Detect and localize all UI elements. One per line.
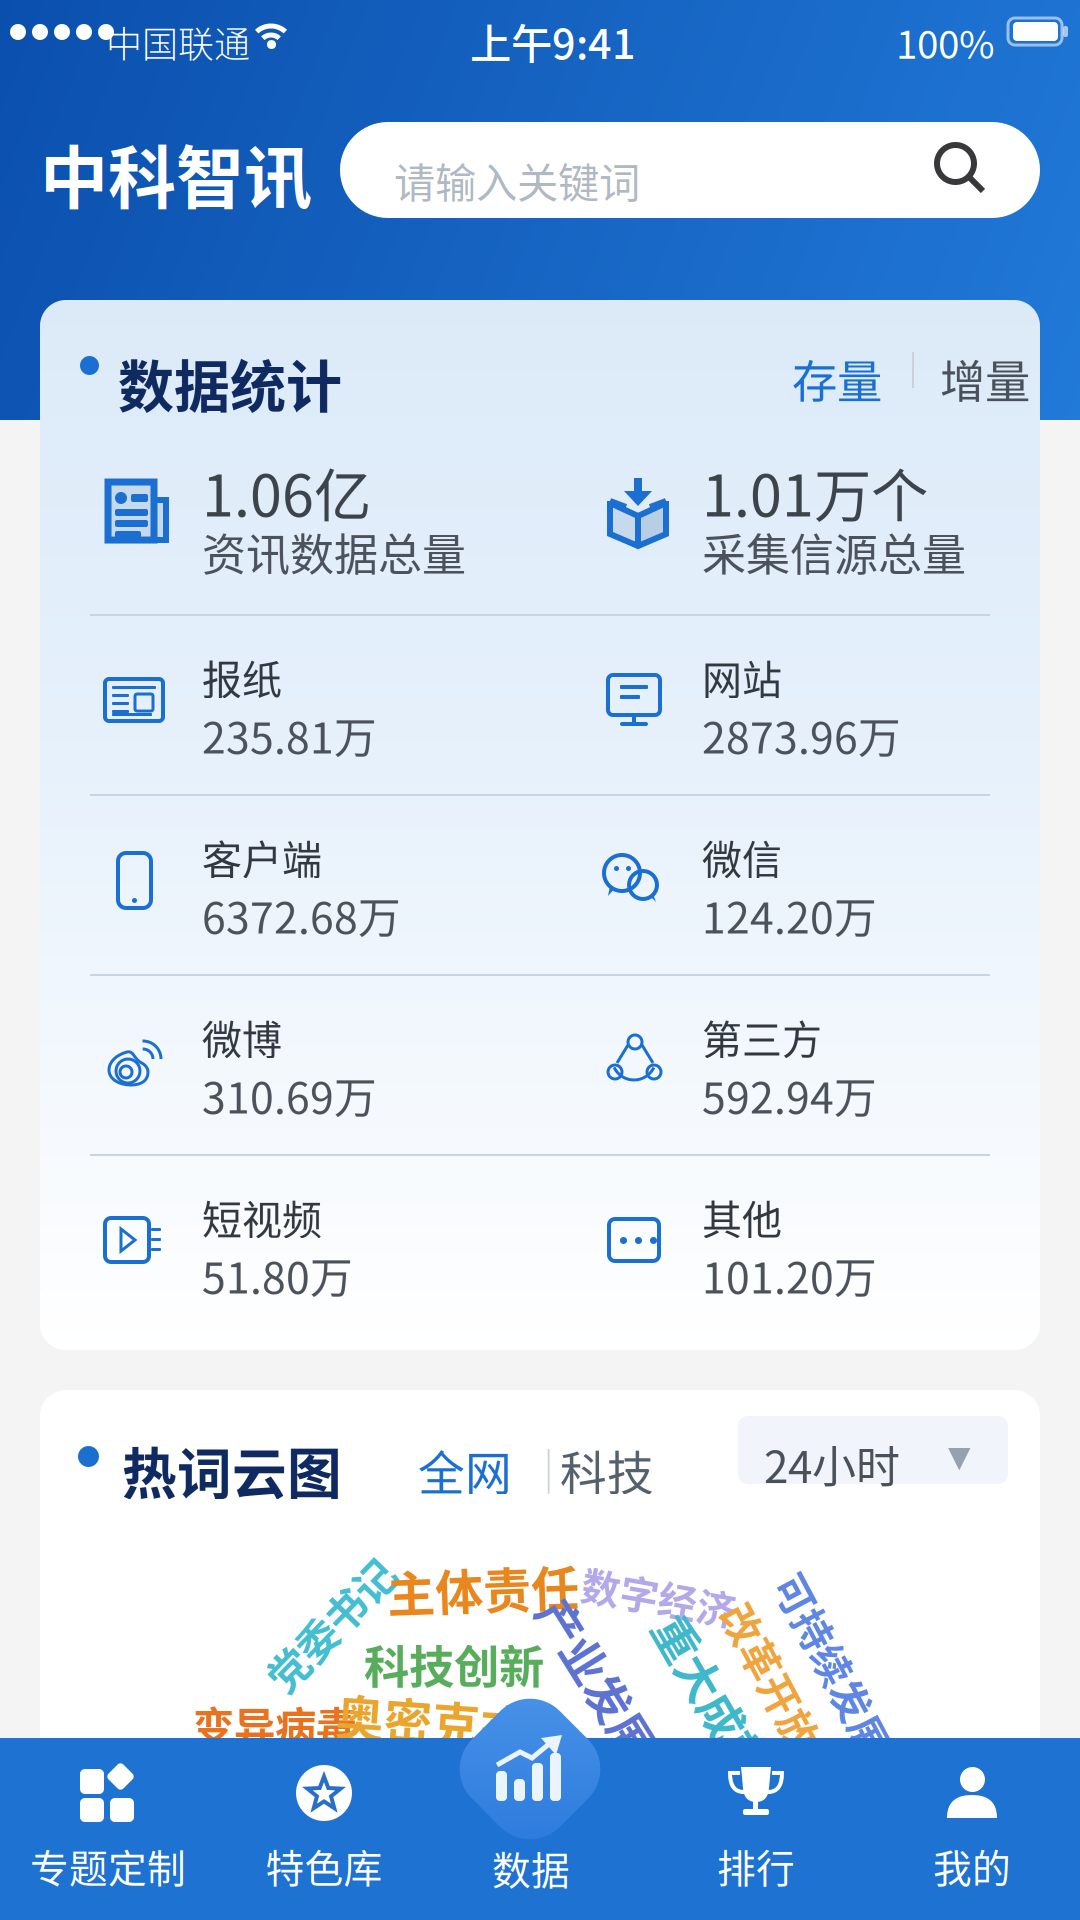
staticText: 微博 [202,1008,282,1066]
staticText: 变异病毒 [193,1694,357,1754]
staticText: 24小时 [764,1432,900,1496]
staticText: 增量 [940,346,1030,412]
staticText: 1.01万个 [702,450,928,533]
staticText: 客户端 [202,828,322,886]
staticText: 592.94万 [702,1064,877,1126]
staticText: 微信 [702,828,782,886]
staticText: 特色库 [265,1838,382,1894]
staticText: 采集信源总量 [702,520,966,584]
staticText: 第三方 [702,1008,822,1066]
staticText: 1.06亿 [202,450,371,533]
staticText: 网站 [702,648,782,706]
staticText: 科技创新 [364,1631,544,1697]
staticText: 6372.68万 [202,884,401,946]
staticText: 重大成就 [622,1663,802,1729]
staticText: 主体责任 [387,1553,579,1623]
button[interactable]: 我的 [864,1738,1080,1920]
staticText: 上午9:41 [470,11,636,71]
staticText: 可持续发展 [734,1635,934,1693]
button[interactable]: 请输入关键词 [340,122,1040,218]
staticText: 产业发展 [508,1645,688,1711]
button[interactable]: 数据 [430,1704,630,1886]
staticText: 中国联通 [106,16,250,68]
staticText: 数据统计 [118,342,342,423]
staticText: 资讯数据总量 [202,520,466,584]
staticText: 数据 [492,1840,570,1896]
button[interactable]: 全网 [418,1436,512,1504]
staticText: 全网 [418,1436,512,1504]
button[interactable]: 排行 [648,1738,864,1920]
staticText: 2873.96万 [702,704,901,766]
staticText: 中科智讯 [40,124,312,222]
button[interactable]: 科技 [560,1436,654,1504]
staticText: 党委书记 [248,1594,412,1654]
button[interactable]: 特色库 [216,1738,432,1920]
staticText: 310.69万 [202,1064,377,1126]
button[interactable]: 存量 [792,346,882,412]
staticText: 数字经济 [581,1568,737,1624]
staticText: 101.20万 [702,1244,877,1306]
button[interactable]: 增量 [940,346,1030,412]
staticText: 热词云图 [122,1430,342,1509]
staticText: 专题定制 [30,1838,186,1894]
staticText: 请输入关键词 [394,150,640,210]
staticText: │ [526,1436,571,1502]
staticText: 排行 [717,1838,795,1894]
staticText: ▼ [948,1440,971,1473]
staticText: 124.20万 [702,884,877,946]
staticText: 100% [896,14,995,70]
staticText: 报纸 [202,648,282,706]
staticText: 改革开放 [692,1647,852,1705]
staticText: 235.81万 [202,704,377,766]
staticText: 短视频 [202,1188,322,1246]
staticText: 存量 [792,346,882,412]
staticText: 我的 [933,1838,1011,1894]
button[interactable]: 24小时 [738,1416,1008,1484]
staticText: 其他 [702,1188,782,1246]
staticText: 科技 [560,1436,654,1504]
staticText: 奥密克戎 [336,1685,528,1755]
staticText: 51.80万 [202,1244,353,1306]
button[interactable]: 专题定制 [0,1738,216,1920]
